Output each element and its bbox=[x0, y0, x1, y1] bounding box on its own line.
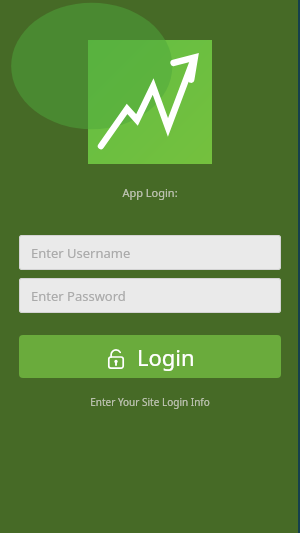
button[interactable]: Enter Username bbox=[19, 235, 281, 270]
button[interactable]: Enter Password bbox=[19, 278, 281, 313]
staticText: Enter Password bbox=[31, 287, 126, 305]
staticText: Enter Username bbox=[31, 244, 131, 262]
button[interactable]: Login bbox=[19, 335, 281, 378]
staticText: Login bbox=[137, 342, 195, 372]
staticText: App Login: bbox=[122, 185, 178, 200]
staticText: Enter Your Site Login Info bbox=[90, 395, 210, 409]
